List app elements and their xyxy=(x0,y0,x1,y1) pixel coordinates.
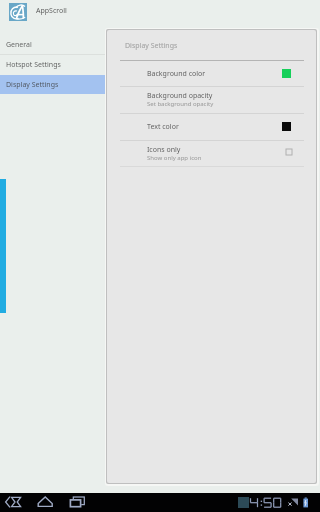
button[interactable]: Background opacity xyxy=(106,86,317,113)
staticText: Display Settings xyxy=(6,80,59,90)
staticText: Display Settings xyxy=(125,41,178,51)
staticText: Background opacity xyxy=(147,91,213,101)
staticText: Set background opacity xyxy=(147,100,214,108)
button[interactable]: Display Settings xyxy=(0,75,106,94)
button[interactable]: Home xyxy=(37,496,56,510)
staticText: General xyxy=(6,40,32,50)
staticText: Background color xyxy=(147,69,206,79)
staticText: Hotspot Settings xyxy=(6,60,61,70)
button[interactable]: AppScroll xyxy=(0,0,320,24)
button[interactable]: Icons only xyxy=(106,140,317,167)
button[interactable]: Background color xyxy=(106,60,317,87)
other: Clock 4:50 xyxy=(250,498,289,508)
button[interactable]: General xyxy=(0,35,106,54)
button[interactable]: Recent apps xyxy=(69,496,88,510)
button[interactable]: Text color xyxy=(106,113,317,140)
staticText: Text color xyxy=(147,122,179,132)
staticText: AppScroll xyxy=(36,6,67,16)
button[interactable]: Icons only checkbox xyxy=(282,149,291,158)
staticText: Show only app icon xyxy=(147,154,202,162)
button[interactable]: Hotspot Settings xyxy=(0,55,106,75)
staticText: Icons only xyxy=(147,145,181,155)
button[interactable]: Back xyxy=(5,496,23,510)
